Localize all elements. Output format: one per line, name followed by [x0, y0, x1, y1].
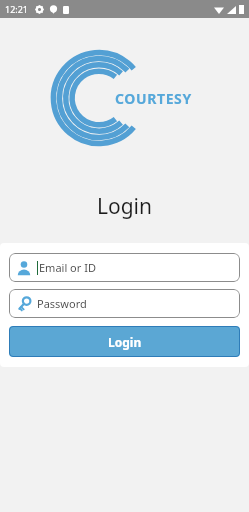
staticText: COURTESY	[115, 89, 192, 108]
staticText: Email or ID	[39, 260, 96, 275]
other: User	[16, 260, 32, 276]
staticText: Login	[108, 334, 142, 350]
staticText: Password	[37, 296, 87, 311]
button[interactable]: Login	[9, 326, 240, 357]
button[interactable]: User	[9, 253, 240, 282]
other: Password	[16, 296, 32, 312]
button[interactable]: Password	[9, 289, 240, 318]
staticText: Login	[97, 192, 153, 221]
staticText: 12:21	[5, 3, 29, 15]
